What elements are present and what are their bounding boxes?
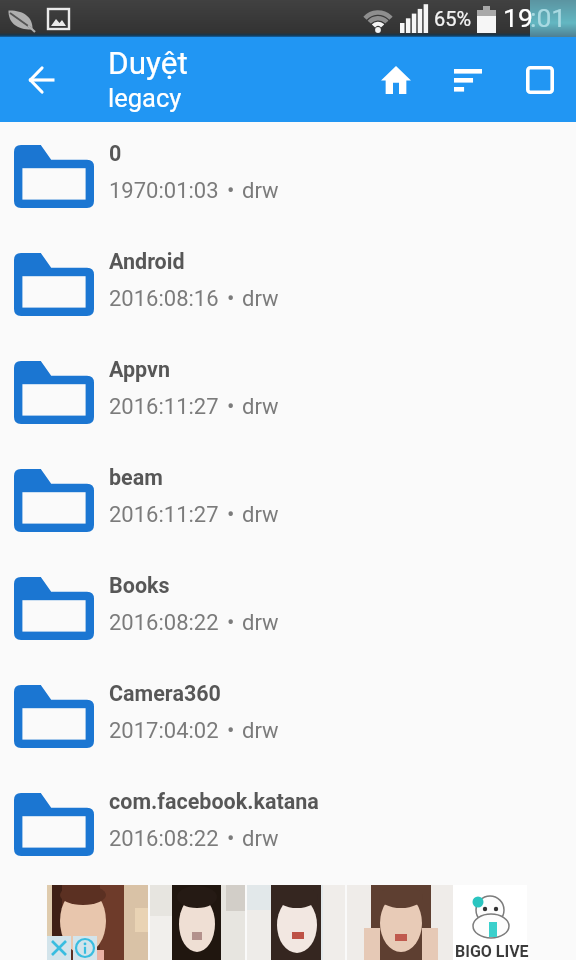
staticText: 19 bbox=[503, 2, 533, 33]
button[interactable]: Appvn bbox=[0, 338, 576, 446]
button[interactable]: Sort bbox=[438, 37, 498, 122]
button[interactable]: com.facebook.katana bbox=[0, 770, 576, 878]
staticText: 2016:08:22 bbox=[109, 826, 219, 852]
staticText: drw bbox=[242, 718, 279, 744]
staticText: 65% bbox=[434, 7, 472, 30]
button[interactable]: Books bbox=[0, 554, 576, 662]
button[interactable]: beam bbox=[0, 446, 576, 554]
staticText: Books bbox=[109, 573, 170, 598]
staticText: BIGO LIVE bbox=[455, 942, 529, 960]
button[interactable]: Home bbox=[365, 37, 427, 122]
staticText: 1970:01:03 bbox=[109, 178, 219, 204]
staticText: drw bbox=[242, 826, 279, 852]
staticText: drw bbox=[242, 610, 279, 636]
staticText: com.facebook.katana bbox=[109, 789, 319, 814]
staticText: beam bbox=[109, 465, 163, 490]
staticText: :01 bbox=[530, 2, 567, 33]
button[interactable]: Select all bbox=[510, 37, 570, 122]
staticText: 2016:11:27 bbox=[109, 502, 219, 528]
staticText: Appvn bbox=[109, 357, 170, 382]
staticText: drw bbox=[242, 502, 279, 528]
button[interactable]: Back bbox=[0, 37, 84, 122]
staticText: drw bbox=[242, 178, 279, 204]
staticText: 2016:08:22 bbox=[109, 610, 219, 636]
staticText: • bbox=[227, 826, 235, 852]
staticText: 2017:04:02 bbox=[109, 718, 219, 744]
button[interactable]: Ad info bbox=[73, 936, 97, 960]
staticText: • bbox=[227, 394, 235, 420]
staticText: legacy bbox=[108, 83, 182, 113]
staticText: • bbox=[227, 286, 235, 312]
staticText: drw bbox=[242, 286, 279, 312]
button[interactable]: Camera360 bbox=[0, 662, 576, 770]
staticText: 2016:11:27 bbox=[109, 394, 219, 420]
staticText: • bbox=[227, 178, 235, 204]
staticText: Duyệt bbox=[108, 45, 188, 82]
staticText: • bbox=[227, 502, 235, 528]
staticText: 2016:08:16 bbox=[109, 286, 219, 312]
staticText: Android bbox=[109, 249, 185, 274]
button[interactable]: Advertisement bbox=[0, 884, 576, 960]
staticText: 0 bbox=[109, 141, 122, 166]
staticText: • bbox=[227, 718, 235, 744]
staticText: • bbox=[227, 610, 235, 636]
button[interactable]: 0 bbox=[0, 122, 576, 230]
button[interactable]: Close ad bbox=[47, 936, 71, 960]
staticText: drw bbox=[242, 394, 279, 420]
staticText: Camera360 bbox=[109, 681, 221, 706]
button[interactable]: Android bbox=[0, 230, 576, 338]
